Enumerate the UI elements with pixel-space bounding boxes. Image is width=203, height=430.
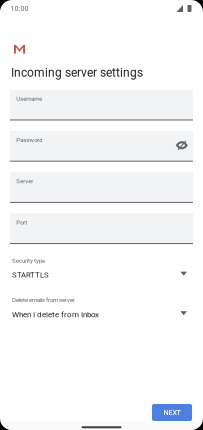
staticText: Security type [12, 257, 45, 264]
staticText: Server [16, 178, 33, 185]
button[interactable]: Show password [177, 131, 187, 150]
staticText: NEXT [163, 408, 180, 417]
staticText: Incoming server settings [11, 66, 143, 80]
staticText: STARTTLS [12, 270, 49, 279]
staticText: When I delete from Inbox [12, 310, 99, 319]
button[interactable]: Security type [12, 257, 192, 279]
staticText: 10:00 [10, 4, 28, 13]
staticText: Username [16, 95, 42, 102]
button[interactable]: Delete emails from server [12, 296, 192, 319]
button[interactable]: NEXT [152, 404, 192, 421]
staticText: Port [16, 219, 27, 226]
staticText: Password [16, 136, 42, 143]
staticText: Delete emails from server [12, 296, 75, 303]
